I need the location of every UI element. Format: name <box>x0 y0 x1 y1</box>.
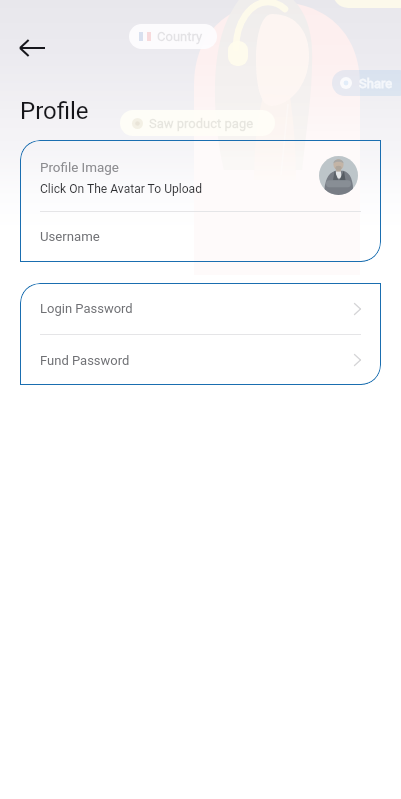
button[interactable]: Login Password <box>20 283 381 334</box>
staticText: Click On The Avatar To Upload <box>40 182 203 196</box>
button[interactable]: Upload avatar <box>319 156 358 195</box>
staticText: Profile <box>20 97 89 125</box>
button[interactable]: Username <box>20 212 381 261</box>
button[interactable]: Share <box>332 70 401 96</box>
staticText: Country <box>157 29 203 44</box>
button[interactable]: Fund Password <box>20 335 381 385</box>
staticText: Saw product page <box>149 116 254 131</box>
staticText: Fund Password <box>40 353 354 368</box>
staticText: Share <box>359 76 393 91</box>
button[interactable]: Back <box>10 26 54 70</box>
button[interactable]: Country <box>129 24 217 49</box>
button[interactable]: Saw product page <box>120 110 275 136</box>
staticText: Profile Image <box>40 160 119 176</box>
staticText: Login Password <box>40 301 354 316</box>
staticText: Username <box>40 229 100 244</box>
